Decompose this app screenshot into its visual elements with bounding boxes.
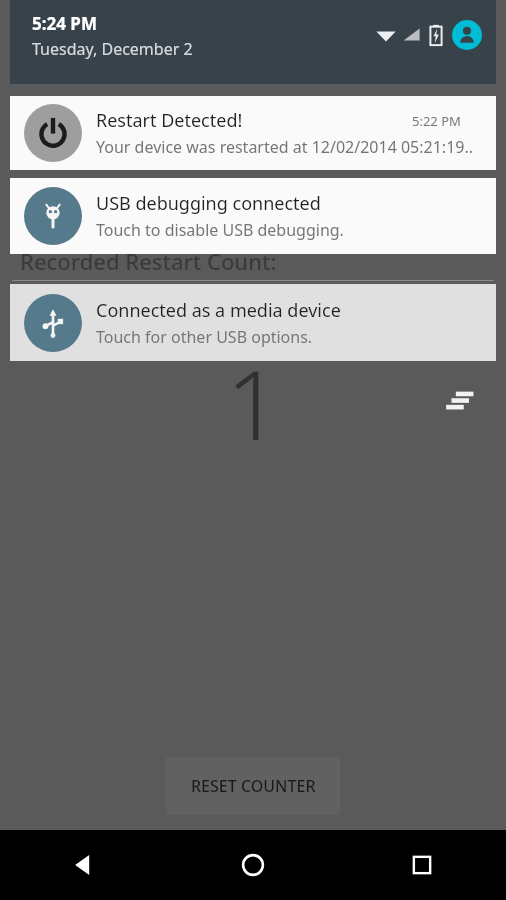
button[interactable]: Back	[0, 830, 168, 900]
button[interactable]: Restart Detected!	[10, 96, 496, 170]
staticText: Connected as a media device	[96, 298, 341, 323]
button[interactable]: User profile	[452, 20, 482, 50]
button[interactable]: Recent apps	[337, 830, 506, 900]
staticText: USB debugging connected	[96, 191, 321, 216]
staticText: 1	[226, 337, 281, 468]
other: Battery charging	[429, 24, 443, 46]
staticText: Your device was restarted at 12/02/2014 …	[96, 136, 474, 158]
button[interactable]: USB debugging connected	[10, 178, 496, 254]
other: Cellular signal	[402, 25, 422, 45]
staticText: 5:24 PM	[32, 12, 97, 35]
staticText: Touch for other USB options.	[96, 326, 313, 348]
staticText: Tuesday, December 2	[32, 38, 193, 60]
staticText: 5:22 PM	[412, 112, 461, 130]
button[interactable]: Connected as a media device	[10, 284, 496, 361]
button[interactable]: Home	[168, 830, 337, 900]
staticText: RESET COUNTER	[191, 775, 316, 797]
button[interactable]: RESET COUNTER	[166, 757, 340, 815]
staticText: Recorded Restart Count:	[20, 246, 277, 276]
button[interactable]: Clear all notifications	[440, 378, 484, 422]
staticText: Restart Detected!	[96, 108, 243, 133]
other: Wi-Fi	[375, 24, 397, 46]
staticText: Touch to disable USB debugging.	[96, 219, 344, 241]
